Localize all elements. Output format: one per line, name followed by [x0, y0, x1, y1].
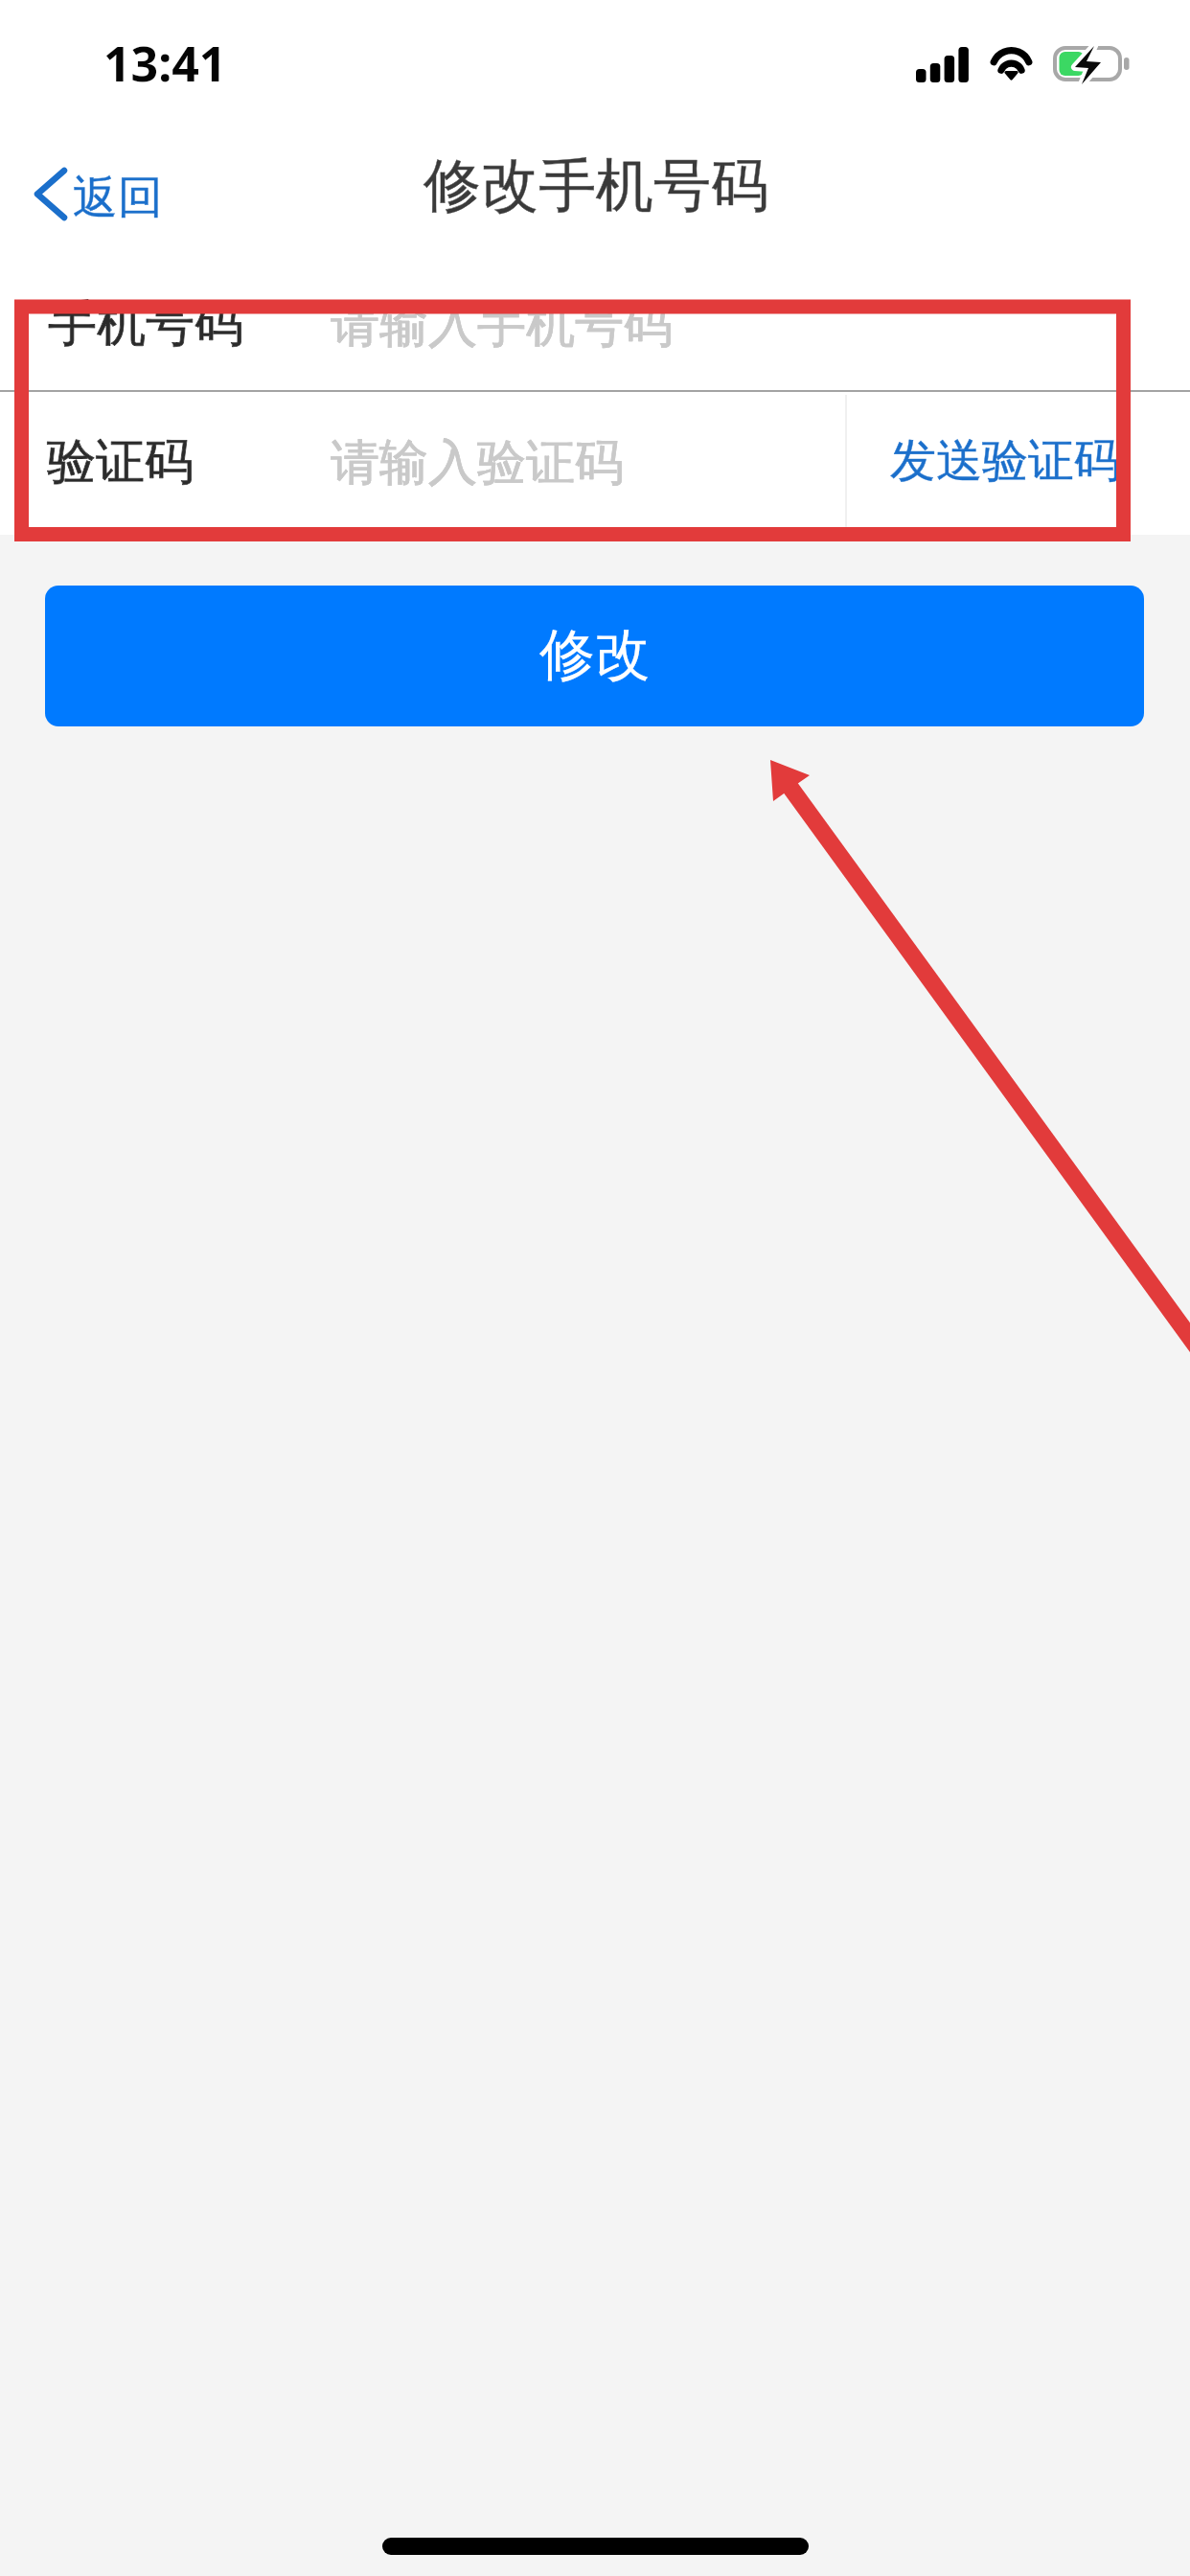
staticText: 返回: [73, 170, 163, 226]
staticText: 请输入手机号码: [331, 294, 673, 356]
other: Battery charging: [1053, 46, 1132, 86]
staticText: 13:41: [103, 31, 227, 96]
staticText: 请输入验证码: [331, 432, 624, 494]
other: Cellular signal: [916, 47, 969, 82]
staticText: 发送验证码: [890, 432, 1120, 490]
staticText: 验证码: [47, 431, 194, 493]
staticText: 修改: [539, 620, 651, 690]
staticText: 验证码: [47, 431, 194, 493]
staticText: 修改手机号码: [423, 149, 768, 222]
button[interactable]: [0, 392, 845, 535]
staticText: 手机号码: [48, 293, 243, 355]
staticText: 请输入手机号码: [331, 294, 673, 356]
other: Wi-Fi: [989, 45, 1035, 82]
staticText: 发送验证码: [890, 432, 1120, 490]
button[interactable]: [0, 293, 1190, 390]
staticText: 请输入验证码: [331, 432, 624, 494]
button[interactable]: 返回: [10, 146, 184, 245]
button[interactable]: 发送验证码: [847, 392, 1190, 535]
staticText: 修改手机号码: [423, 149, 768, 222]
staticText: 返回: [73, 170, 163, 226]
staticText: 手机号码: [48, 293, 243, 355]
button[interactable]: 修改: [45, 586, 1144, 726]
